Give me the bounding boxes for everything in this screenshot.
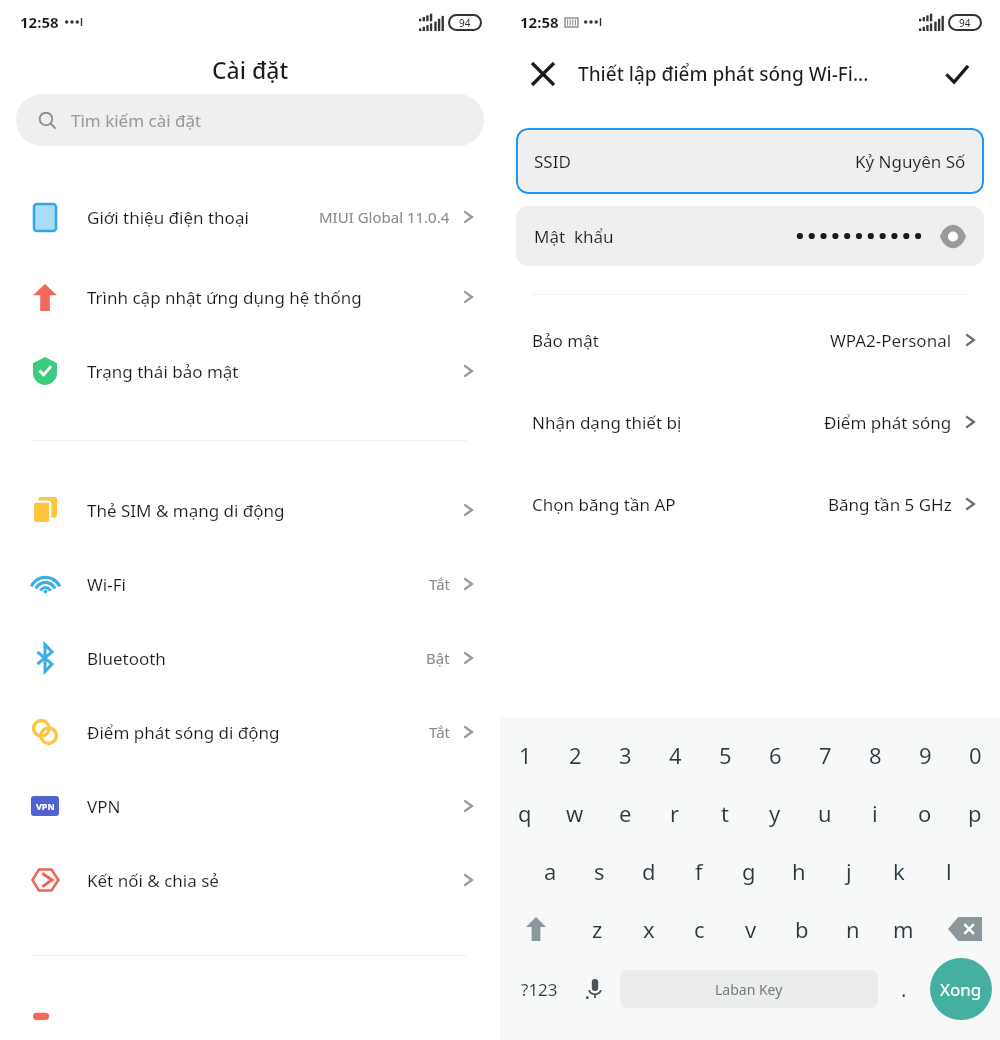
button[interactable]: 8 xyxy=(850,726,900,784)
button[interactable]: 4 xyxy=(650,726,700,784)
button[interactable]: a xyxy=(526,842,575,900)
staticText: 12:58 xyxy=(520,12,559,32)
button[interactable]: Laban Key xyxy=(620,970,878,1008)
button[interactable]: Kết nối & chia sẻ xyxy=(0,843,500,917)
button[interactable]: b xyxy=(776,900,827,958)
button[interactable]: 1 xyxy=(500,726,550,784)
button[interactable]: u xyxy=(800,784,850,842)
staticText: m xyxy=(893,914,914,944)
button[interactable]: 5 xyxy=(700,726,750,784)
staticText: e xyxy=(619,798,632,828)
staticText: Điểm phát sóng xyxy=(824,411,952,434)
button[interactable]: SSID xyxy=(516,128,984,194)
staticText: ?123 xyxy=(521,978,558,1001)
button[interactable]: Giới thiệu điện thoại xyxy=(0,174,500,260)
staticText: Kết nối & chia sẻ xyxy=(87,869,452,892)
button[interactable]: m xyxy=(878,900,929,958)
staticText: v xyxy=(745,914,757,944)
staticText: 12:58 xyxy=(20,12,59,32)
button[interactable]: c xyxy=(674,900,725,958)
button[interactable]: Close xyxy=(526,57,560,91)
staticText: t xyxy=(721,798,729,828)
button[interactable]: Thẻ SIM & mạng di động xyxy=(0,473,500,547)
button[interactable]: 9 xyxy=(900,726,950,784)
button[interactable]: j xyxy=(824,842,874,900)
button[interactable]: e xyxy=(600,784,650,842)
button[interactable]: Shift xyxy=(500,900,572,958)
staticText: VPN xyxy=(87,795,452,818)
staticText: c xyxy=(694,914,705,944)
button[interactable]: 0 xyxy=(950,726,1000,784)
button[interactable]: p xyxy=(950,784,1000,842)
staticText: 8 xyxy=(869,740,882,770)
button[interactable]: Tìm kiếm cài đặt xyxy=(16,94,484,146)
button[interactable]: r xyxy=(650,784,700,842)
staticText: Xong xyxy=(940,978,982,1001)
staticText: Bluetooth xyxy=(87,647,416,670)
staticText: d xyxy=(642,856,656,886)
staticText: y xyxy=(769,798,781,828)
button[interactable]: Chọn băng tần AP xyxy=(500,487,1000,521)
button[interactable]: . xyxy=(878,958,930,1020)
button[interactable]: Trình cập nhật ứng dụng hệ thống xyxy=(0,260,500,334)
button[interactable]: 7 xyxy=(800,726,850,784)
button[interactable]: f xyxy=(674,842,724,900)
button[interactable]: Bluetooth xyxy=(0,621,500,695)
staticText: h xyxy=(792,856,806,886)
button[interactable]: Mật khẩu xyxy=(516,206,984,266)
button[interactable]: 3 xyxy=(600,726,650,784)
staticText: Chọn băng tần AP xyxy=(532,493,676,516)
button[interactable]: v xyxy=(725,900,776,958)
staticText: l xyxy=(946,856,952,886)
staticText: p xyxy=(968,798,982,828)
staticText: 94 xyxy=(959,16,971,30)
button[interactable]: w xyxy=(550,784,600,842)
button[interactable]: Trạng thái bảo mật xyxy=(0,334,500,408)
button[interactable]: y xyxy=(750,784,800,842)
staticText: w xyxy=(566,798,584,828)
staticText: Tìm kiếm cài đặt xyxy=(71,109,202,132)
staticText: Bảo mật xyxy=(532,329,599,352)
staticText: MIUI Global 11.0.4 xyxy=(319,207,450,227)
button[interactable]: Voice input xyxy=(570,958,620,1020)
button[interactable]: Backspace xyxy=(929,900,1000,958)
staticText: j xyxy=(846,856,852,886)
button[interactable]: VPN xyxy=(0,769,500,843)
button[interactable]: h xyxy=(774,842,824,900)
button[interactable]: Điểm phát sóng di động xyxy=(0,695,500,769)
staticText: r xyxy=(670,798,680,828)
button[interactable]: Show password xyxy=(938,221,968,251)
staticText: SSID xyxy=(534,150,571,173)
staticText: Bật xyxy=(426,648,450,668)
staticText: n xyxy=(846,914,860,944)
button[interactable]: s xyxy=(575,842,624,900)
staticText: Kỷ Nguyên Số xyxy=(855,150,966,173)
staticText: Cài đặt xyxy=(212,54,289,85)
button[interactable]: Confirm xyxy=(940,57,974,91)
button[interactable]: x xyxy=(623,900,674,958)
button[interactable]: Xong xyxy=(930,958,992,1020)
staticText: u xyxy=(818,798,832,828)
button[interactable]: l xyxy=(924,842,974,900)
button[interactable]: ?123 xyxy=(508,958,570,1020)
staticText: Băng tần 5 GHz xyxy=(828,493,952,516)
button[interactable]: o xyxy=(900,784,950,842)
staticText: b xyxy=(795,914,809,944)
button[interactable]: q xyxy=(500,784,550,842)
button[interactable]: Nhận dạng thiết bị xyxy=(500,405,1000,439)
button[interactable]: k xyxy=(874,842,924,900)
button[interactable]: i xyxy=(850,784,900,842)
button[interactable]: Wi-Fi xyxy=(0,547,500,621)
button[interactable]: 6 xyxy=(750,726,800,784)
staticText: q xyxy=(518,798,532,828)
staticText: Mật khẩu xyxy=(534,225,614,248)
button[interactable]: g xyxy=(724,842,774,900)
button[interactable]: 2 xyxy=(550,726,600,784)
button[interactable]: t xyxy=(700,784,750,842)
button[interactable]: n xyxy=(827,900,878,958)
button[interactable]: Bảo mật xyxy=(500,323,1000,357)
staticText: 4 xyxy=(669,740,682,770)
button[interactable]: d xyxy=(624,842,674,900)
staticText: Tắt xyxy=(429,574,450,594)
button[interactable]: z xyxy=(572,900,623,958)
